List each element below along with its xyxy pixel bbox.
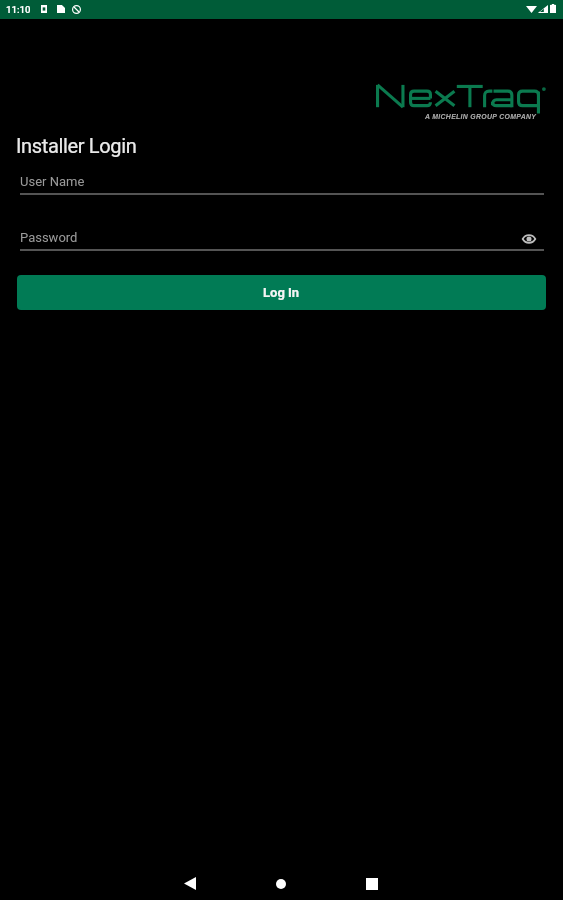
staticText: Password	[20, 230, 78, 245]
button[interactable]: Password	[20, 226, 544, 251]
button[interactable]: Log In	[17, 275, 546, 310]
button[interactable]: Show password	[522, 233, 536, 245]
button[interactable]: Home	[258, 861, 304, 900]
staticText: 11:10	[6, 4, 31, 15]
button[interactable]: Recents	[349, 861, 395, 900]
staticText: Log In	[263, 285, 300, 300]
button[interactable]: Back	[167, 861, 213, 900]
staticText: A MICHELIN GROUP COMPANY	[425, 113, 537, 121]
button[interactable]: User Name	[20, 170, 544, 195]
staticText: Installer Login	[16, 134, 137, 157]
staticText: User Name	[20, 174, 85, 189]
